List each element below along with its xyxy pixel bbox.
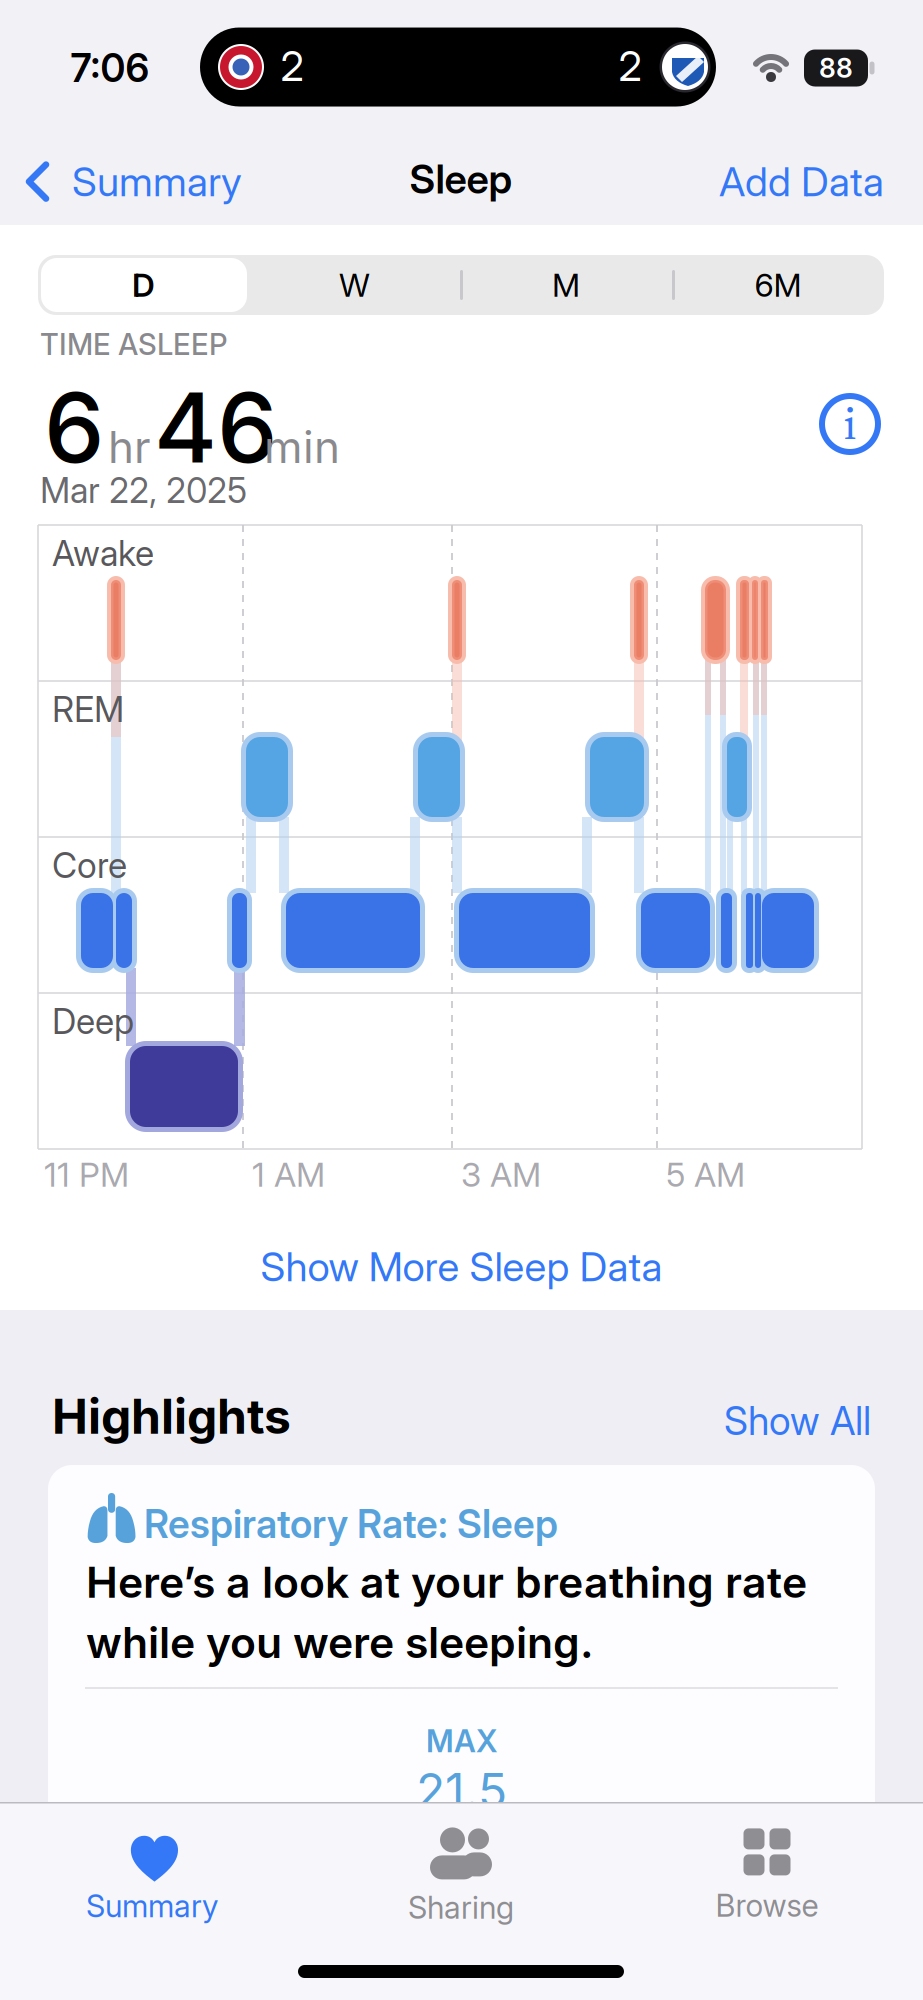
staticText: 46 [154,371,277,484]
staticText: Show All [724,1398,871,1444]
staticText: Here’s a look at your breathing rate whi… [86,1557,807,1668]
staticText: 2 [280,42,303,90]
staticText: Add Data [719,158,884,205]
staticText: W [339,266,370,304]
button[interactable]: About Sleep [820,394,880,454]
staticText: TIME ASLEEP [40,327,228,362]
staticText: 7:06 [70,45,149,91]
staticText: 88 [819,52,853,84]
staticText: Browse [715,1887,818,1924]
staticText: 21.5 [416,1762,507,1819]
staticText: M [552,266,580,304]
staticText: Deep [52,1001,134,1042]
staticText: Awake [52,533,154,574]
staticText: Show More Sleep Data [260,1243,662,1290]
button[interactable]: Sharing [321,1816,601,1936]
staticText: D [132,266,155,304]
button[interactable]: Show All [724,1398,871,1444]
staticText: hr [108,421,151,473]
button[interactable]: 6M [672,255,884,315]
staticText: Summary [72,158,242,205]
staticText: MAX [426,1723,497,1759]
staticText: i [843,392,856,454]
staticText: Highlights [52,1388,291,1445]
button[interactable]: Add Data [719,158,884,205]
staticText: 1 AM [252,1155,325,1194]
staticText: Respiratory Rate: Sleep [144,1501,558,1547]
button[interactable]: W [249,255,460,315]
staticText: Sleep [409,155,512,203]
staticText: Mar 22, 2025 [40,470,247,511]
button[interactable]: Browse [627,1816,907,1936]
button[interactable]: Show More Sleep Data [260,1243,662,1290]
staticText: Sharing [408,1889,514,1926]
staticText: Summary [86,1888,218,1924]
staticText: 3 AM [461,1155,541,1194]
button[interactable]: Summary [12,1816,292,1936]
staticText: 11 PM [44,1155,129,1194]
staticText: 2 [618,42,641,90]
staticText: 6M [754,266,801,304]
button[interactable]: D [38,255,249,315]
staticText: 6 [44,371,104,484]
staticText: 5 AM [666,1155,745,1194]
button[interactable]: Summary [26,158,242,205]
staticText: min [264,421,340,473]
button[interactable]: M [460,255,672,315]
staticText: REM [52,689,124,730]
staticText: Core [52,845,127,886]
button[interactable]: Respiratory Rate: Sleep [48,1465,875,1885]
